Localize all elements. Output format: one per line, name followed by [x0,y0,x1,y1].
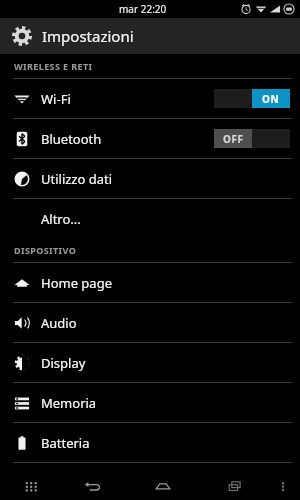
button[interactable]: App [0,463,300,500]
button[interactable]: Audio [0,303,300,342]
button[interactable]: Memoria [0,383,300,422]
staticText: Home page [41,274,112,292]
staticText: Display [41,354,86,372]
staticText: Wi-Fi [41,90,71,108]
button[interactable]: Altro... [0,199,300,238]
staticText: DISPOSITIVO [14,244,77,256]
staticText: WIRELESS E RETI [14,60,93,72]
button[interactable]: Toggle on [214,89,290,108]
button[interactable]: Bluetooth [0,119,300,158]
staticText: mar 22:20 [119,2,167,16]
button[interactable]: Utilizzo dati [0,159,300,198]
button[interactable]: Wi-Fi [0,79,300,118]
staticText: Bluetooth [41,130,102,148]
button[interactable]: Home page [0,263,300,302]
button[interactable]: Batteria [0,423,300,462]
staticText: Altro... [41,210,81,228]
button[interactable]: Home [122,472,204,500]
staticText: Memoria [41,394,97,412]
staticText: Impostazioni [42,26,134,46]
button[interactable]: More options [266,472,300,500]
staticText: Utilizzo dati [41,170,113,188]
staticText: OFF [223,132,244,146]
button[interactable]: Impostazioni [0,18,300,54]
button[interactable]: Back [62,472,122,500]
staticText: ON [262,92,280,106]
staticText: Audio [41,314,77,332]
button[interactable]: Toggle off [214,129,290,148]
button[interactable]: Display [0,343,300,382]
staticText: Batteria [41,434,90,452]
button[interactable]: Recent apps [204,472,266,500]
button[interactable]: Input method [0,472,62,500]
